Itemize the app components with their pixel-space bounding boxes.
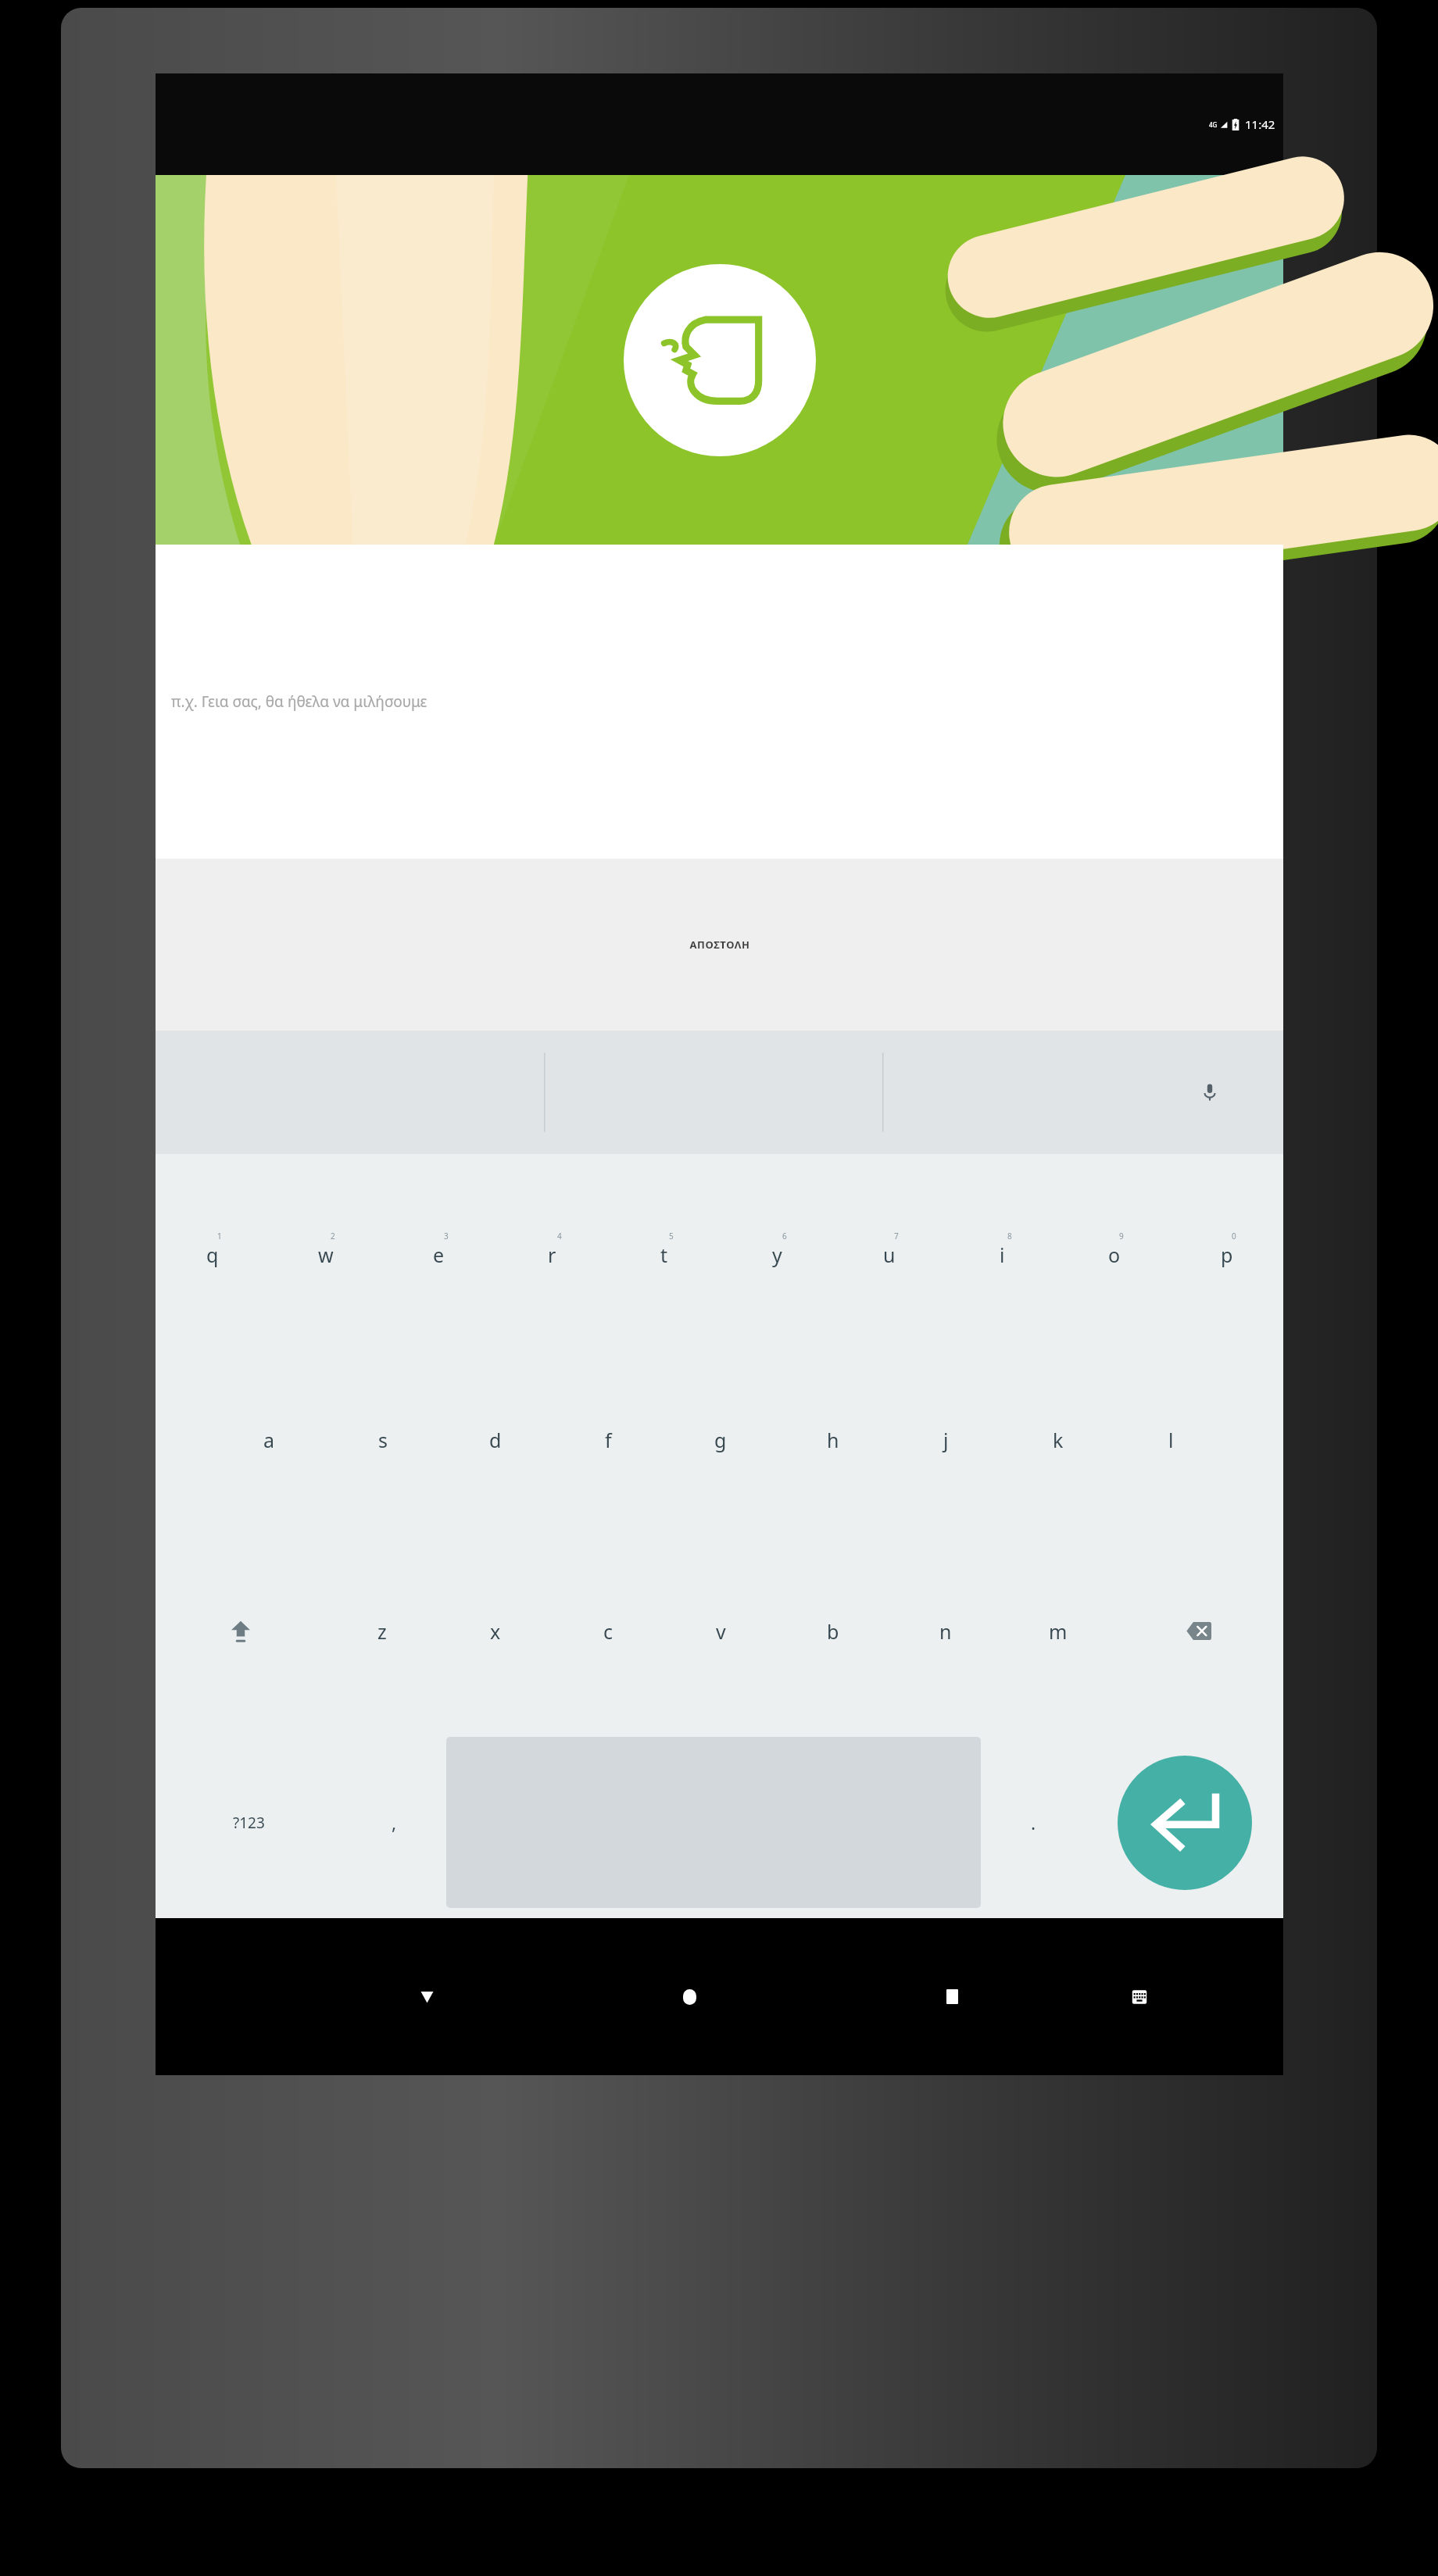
staticText: y bbox=[772, 1242, 782, 1268]
staticText: c bbox=[603, 1618, 613, 1645]
button[interactable]: 4 bbox=[495, 1154, 608, 1345]
staticText: 6 bbox=[782, 1231, 787, 1242]
staticText: l bbox=[1168, 1427, 1174, 1453]
button[interactable]: g bbox=[664, 1345, 777, 1535]
staticText: t bbox=[660, 1242, 668, 1268]
staticText: π.χ. Γεια σας, θα ήθελα να μιλήσουμε bbox=[171, 691, 427, 712]
staticText: p bbox=[1221, 1242, 1233, 1268]
staticText: u bbox=[883, 1242, 896, 1268]
button[interactable]: Backspace bbox=[1114, 1535, 1283, 1727]
staticText: o bbox=[1108, 1242, 1121, 1268]
button[interactable]: 2 bbox=[269, 1154, 382, 1345]
staticText: s bbox=[378, 1427, 388, 1453]
button[interactable]: n bbox=[889, 1535, 1002, 1727]
button[interactable]: m bbox=[1002, 1535, 1114, 1727]
button[interactable]: Recent apps bbox=[867, 1918, 1037, 2075]
button[interactable]: Speak bbox=[624, 264, 816, 456]
button[interactable]: Enter bbox=[1118, 1756, 1252, 1890]
button[interactable]: f bbox=[552, 1345, 664, 1535]
staticText: 11:42 bbox=[1245, 116, 1275, 132]
button[interactable]: π.χ. Γεια σας, θα ήθελα να μιλήσουμε bbox=[156, 545, 1283, 859]
staticText: n bbox=[939, 1618, 952, 1645]
staticText: 3 bbox=[444, 1231, 449, 1242]
staticText: a bbox=[263, 1427, 275, 1453]
staticText: q bbox=[206, 1242, 219, 1268]
button[interactable]: Switch keyboard bbox=[1054, 1918, 1224, 2075]
button[interactable]: x bbox=[438, 1535, 552, 1727]
staticText: ΑΠΟΣΤΟΛΗ bbox=[689, 938, 750, 952]
button[interactable]: 9 bbox=[1058, 1154, 1171, 1345]
staticText: 2 bbox=[331, 1231, 335, 1242]
staticText: 7 bbox=[894, 1231, 899, 1242]
button[interactable]: ΑΠΟΣΤΟΛΗ bbox=[156, 859, 1283, 1031]
staticText: 8 bbox=[1007, 1231, 1012, 1242]
button[interactable]: 1 bbox=[156, 1154, 269, 1345]
button[interactable]: a bbox=[213, 1345, 326, 1535]
button[interactable]: 0 bbox=[1171, 1154, 1283, 1345]
staticText: 0 bbox=[1232, 1231, 1236, 1242]
button[interactable]: h bbox=[777, 1345, 889, 1535]
button[interactable]: z bbox=[325, 1535, 438, 1727]
button[interactable]: v bbox=[664, 1535, 777, 1727]
button[interactable]: Shift bbox=[156, 1535, 325, 1727]
staticText: 4G bbox=[1209, 120, 1218, 129]
staticText: d bbox=[489, 1427, 502, 1453]
button[interactable]: l bbox=[1114, 1345, 1227, 1535]
staticText: h bbox=[827, 1427, 839, 1453]
staticText: e bbox=[433, 1242, 445, 1268]
staticText: z bbox=[377, 1618, 387, 1645]
button[interactable]: Voice input bbox=[1136, 1031, 1283, 1154]
staticText: k bbox=[1053, 1427, 1064, 1453]
button[interactable]: 7 bbox=[833, 1154, 946, 1345]
button[interactable]: 5 bbox=[608, 1154, 721, 1345]
staticText: . bbox=[1031, 1810, 1036, 1835]
button[interactable]: 6 bbox=[721, 1154, 833, 1345]
button[interactable]: ?123 bbox=[156, 1727, 342, 1918]
button[interactable]: d bbox=[439, 1345, 552, 1535]
button[interactable]: b bbox=[777, 1535, 889, 1727]
button[interactable]: 8 bbox=[946, 1154, 1058, 1345]
button[interactable]: s bbox=[326, 1345, 439, 1535]
staticText: , bbox=[392, 1810, 397, 1835]
staticText: 4 bbox=[557, 1231, 562, 1242]
staticText: f bbox=[605, 1427, 612, 1453]
button[interactable]: Home bbox=[605, 1918, 774, 2075]
button[interactable]: 3 bbox=[382, 1154, 495, 1345]
staticText: r bbox=[548, 1242, 556, 1268]
staticText: w bbox=[318, 1242, 334, 1268]
staticText: b bbox=[827, 1618, 839, 1645]
staticText: i bbox=[1000, 1242, 1005, 1268]
staticText: 9 bbox=[1119, 1231, 1124, 1242]
staticText: 1 bbox=[217, 1231, 222, 1242]
staticText: j bbox=[943, 1427, 949, 1453]
button[interactable]: c bbox=[552, 1535, 664, 1727]
staticText: x bbox=[490, 1618, 501, 1645]
button[interactable]: k bbox=[1002, 1345, 1114, 1535]
staticText: 5 bbox=[669, 1231, 674, 1242]
button[interactable]: Hide keyboard bbox=[342, 1918, 512, 2075]
staticText: ?123 bbox=[233, 1813, 265, 1833]
button[interactable]: j bbox=[889, 1345, 1002, 1535]
staticText: v bbox=[716, 1618, 726, 1645]
staticText: g bbox=[714, 1427, 727, 1453]
staticText: m bbox=[1049, 1618, 1068, 1645]
